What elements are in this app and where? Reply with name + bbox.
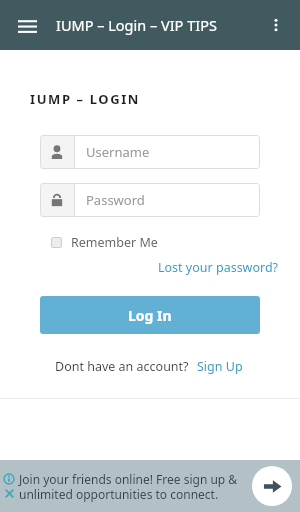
button[interactable]: Open navigation menu [9,7,45,43]
staticText: IUMP – LOGIN [30,90,141,108]
button[interactable]: More options [258,7,294,43]
staticText: Log In [128,306,172,325]
button[interactable]: Advertisement: Join your friends online [0,460,300,512]
button[interactable]: Sign Up [195,356,245,377]
button[interactable]: Log In [40,296,260,334]
staticText: Dont have an account? [55,358,189,375]
staticText: Remember Me [71,234,158,251]
button[interactable]: Remember Me [51,234,158,251]
button[interactable]: Password [40,183,260,217]
staticText: IUMP – Login – VIP TIPS [56,15,217,35]
staticText: Password [86,191,145,209]
button[interactable]: Open advertisement [252,466,292,506]
staticText: Username [86,143,150,161]
button[interactable]: Username [40,135,260,169]
staticText: Join your friends online! Free sign up &… [19,471,243,502]
button[interactable]: Lost your password? [156,257,281,278]
